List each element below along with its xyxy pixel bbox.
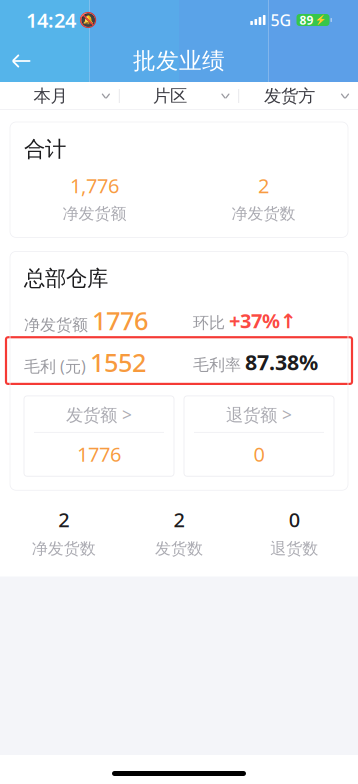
staticText: 发货额 > [66, 403, 132, 426]
button[interactable]: 本月 [0, 82, 119, 110]
staticText: 毛利率 [193, 355, 241, 375]
staticText: 总部仓库 [24, 265, 108, 292]
staticText: 87.38% [245, 348, 318, 376]
staticText: 0 [253, 441, 264, 467]
staticText: 毛利 (元) [24, 355, 86, 376]
staticText: 退货额 > [226, 403, 292, 426]
staticText: 2 [58, 506, 69, 533]
button[interactable]: 退货额 > [184, 396, 334, 476]
staticText: 0 [289, 506, 300, 533]
staticText: 发货方 [264, 85, 315, 107]
staticText: 89 [299, 12, 313, 28]
staticText: 2 [258, 172, 269, 199]
staticText: 退货数 [270, 539, 318, 558]
staticText: 本月 [33, 85, 67, 107]
staticText: 净发货额 [62, 204, 126, 223]
staticText: 1776 [92, 304, 148, 337]
staticText: 🔕 [78, 12, 96, 28]
staticText: 发货数 [155, 539, 203, 558]
staticText: 1776 [77, 441, 121, 467]
staticText: 1552 [90, 345, 146, 379]
staticText: +37%↑ [229, 307, 297, 334]
staticText: ⚡ [314, 15, 326, 25]
button[interactable]: 发货额 > [24, 396, 174, 476]
staticText: 批发业绩 [133, 47, 225, 75]
button[interactable]: 发货方 [239, 82, 358, 110]
staticText: 2 [173, 506, 184, 533]
staticText: 净发货额 [24, 315, 88, 335]
staticText: 合计 [24, 136, 66, 162]
staticText: 14:24 [26, 7, 76, 33]
button[interactable]: 片区 [120, 82, 238, 110]
staticText: 环比 [193, 313, 225, 333]
staticText: 净发货数 [231, 204, 295, 223]
staticText: 片区 [153, 85, 187, 107]
staticText: 5G [270, 9, 291, 31]
button[interactable]: 返回 [0, 40, 44, 82]
staticText: 1,776 [70, 172, 119, 199]
staticText: 净发货数 [32, 539, 96, 558]
